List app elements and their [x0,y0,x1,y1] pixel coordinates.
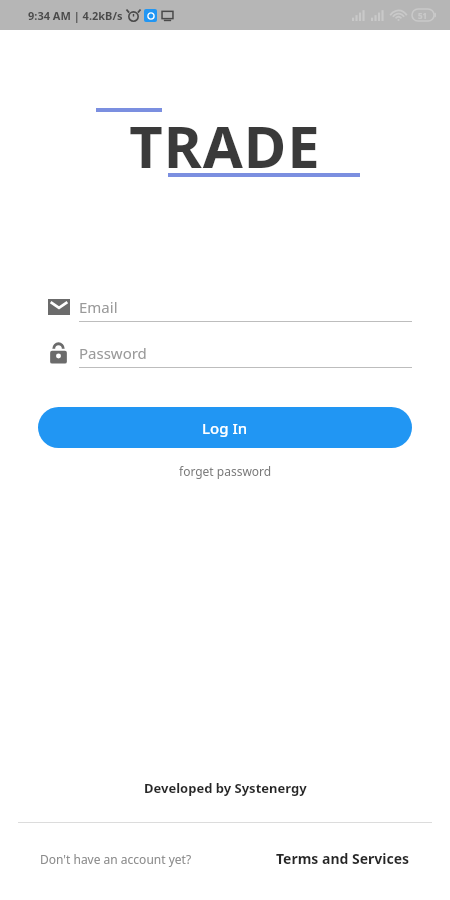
staticText: 9:34 AM | 4.2kB/s [28,8,123,23]
button[interactable]: Password [38,334,412,371]
staticText: Developed by Systenergy [144,779,307,797]
staticText: Password [79,343,147,363]
button[interactable]: Email [38,288,412,325]
other: Password [38,334,79,371]
button[interactable]: forget password [173,461,278,481]
staticText: Email [79,297,118,317]
other: Email [38,288,79,325]
button[interactable]: Terms and Services [276,845,410,872]
staticText: Log In [202,418,248,438]
button[interactable]: Log In [38,407,412,448]
staticText: TRADE [90,106,360,185]
button[interactable]: Don't have an account yet? [40,847,192,871]
staticText: 51 [418,10,428,21]
